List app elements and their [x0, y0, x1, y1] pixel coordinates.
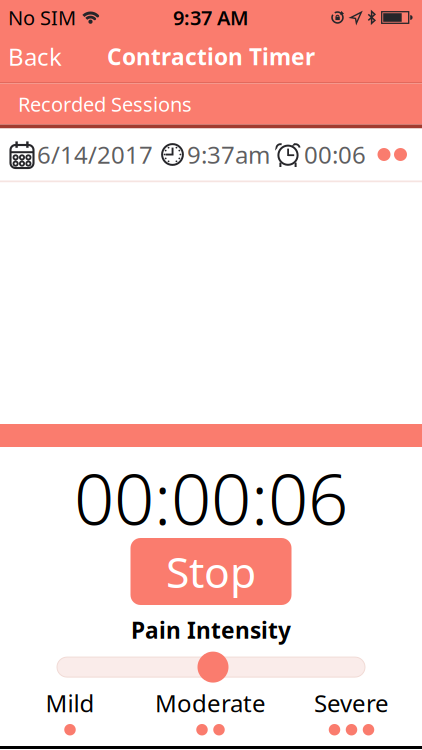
button[interactable]: Stop — [130, 538, 291, 605]
staticText: Stop — [166, 543, 256, 600]
button[interactable]: Pain intensity slider — [195, 652, 226, 683]
button[interactable]: Severe — [281, 687, 422, 735]
staticText: 00:06 — [304, 139, 366, 170]
staticText: 6/14/2017 — [37, 139, 153, 170]
staticText: Pain Intensity — [131, 615, 291, 645]
staticText: Recorded Sessions — [18, 91, 192, 117]
button[interactable]: Mild — [0, 687, 140, 735]
staticText: No SIM — [8, 4, 76, 31]
staticText: Severe — [314, 687, 389, 719]
button[interactable]: Moderate — [140, 687, 281, 735]
button[interactable]: Back — [0, 41, 62, 72]
button[interactable]: Recorded Sessions — [0, 83, 422, 124]
staticText: Moderate — [155, 687, 266, 719]
staticText: 9:37 AM — [173, 4, 249, 31]
staticText: Contraction Timer — [107, 41, 315, 71]
staticText: 9:37am — [187, 139, 270, 170]
staticText: 00:00:06 — [74, 451, 348, 544]
staticText: Back — [8, 41, 62, 72]
button[interactable]: 6/14/2017 — [0, 128, 422, 180]
staticText: Mild — [45, 687, 94, 719]
